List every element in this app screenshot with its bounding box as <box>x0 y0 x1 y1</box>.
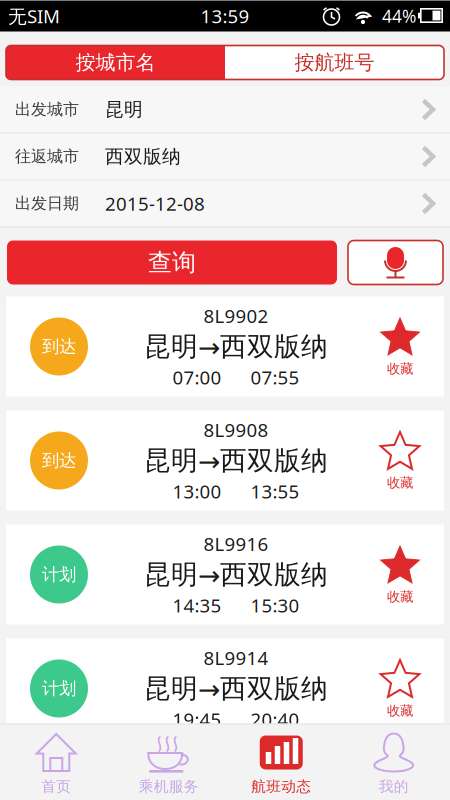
staticText: 07:55 <box>250 365 299 390</box>
staticText: 查询 <box>148 248 196 277</box>
staticText: 无SIM <box>8 4 60 28</box>
staticText: 13:59 <box>200 4 249 28</box>
staticText: 计划 <box>42 678 76 699</box>
staticText: 西双版纳 <box>105 145 181 168</box>
button[interactable]: 往返城市 <box>0 133 450 179</box>
staticText: 昆明→西双版纳 <box>144 330 328 363</box>
button[interactable]: 首页 <box>0 723 112 799</box>
button[interactable]: 出发城市 <box>0 86 450 132</box>
staticText: 20:40 <box>250 707 299 732</box>
staticText: 44% <box>382 4 416 27</box>
button[interactable]: 出发日期 <box>0 180 450 226</box>
button[interactable]: 到达 <box>6 410 444 510</box>
staticText: 我的 <box>379 777 409 795</box>
staticText: 收藏 <box>387 474 413 491</box>
staticText: 收藏 <box>387 702 413 719</box>
staticText: 昆明 <box>105 98 143 121</box>
staticText: 昆明→西双版纳 <box>144 444 328 477</box>
button[interactable]: 我的 <box>337 723 450 799</box>
button[interactable]: 到达 <box>6 296 444 396</box>
staticText: 收藏 <box>387 360 413 377</box>
staticText: 8L9908 <box>203 417 268 442</box>
staticText: 昆明→西双版纳 <box>144 558 328 591</box>
staticText: 乘机服务 <box>139 777 199 795</box>
button[interactable]: 语音搜索 <box>348 240 443 284</box>
staticText: 首页 <box>41 777 71 795</box>
staticText: 13:00 <box>172 479 221 504</box>
staticText: 13:55 <box>250 479 299 504</box>
button[interactable]: 按城市名 <box>6 45 225 79</box>
staticText: 按城市名 <box>75 50 155 75</box>
staticText: 8L9902 <box>203 303 268 328</box>
button[interactable]: 查询 <box>7 240 337 284</box>
staticText: 19:45 <box>172 707 221 732</box>
staticText: 出发城市 <box>15 100 79 119</box>
staticText: 8L9916 <box>203 531 268 556</box>
staticText: 航班动态 <box>251 777 311 795</box>
staticText: 出发日期 <box>15 194 79 213</box>
button[interactable]: 计划 <box>6 638 444 738</box>
staticText: 收藏 <box>387 588 413 605</box>
button[interactable]: 乘机服务 <box>112 723 225 799</box>
button[interactable]: 按航班号 <box>225 45 444 79</box>
button[interactable]: 计划 <box>6 524 444 624</box>
staticText: 按航班号 <box>294 50 374 75</box>
staticText: 14:35 <box>172 593 221 618</box>
staticText: 2015-12-08 <box>105 191 205 216</box>
staticText: 昆明→西双版纳 <box>144 672 328 705</box>
staticText: 到达 <box>42 450 76 471</box>
staticText: 到达 <box>42 336 76 357</box>
button[interactable]: 航班动态 <box>225 723 337 799</box>
staticText: 计划 <box>42 564 76 585</box>
staticText: 07:00 <box>172 365 221 390</box>
staticText: 8L9914 <box>203 645 268 670</box>
staticText: 往返城市 <box>15 147 79 166</box>
staticText: 15:30 <box>250 593 299 618</box>
